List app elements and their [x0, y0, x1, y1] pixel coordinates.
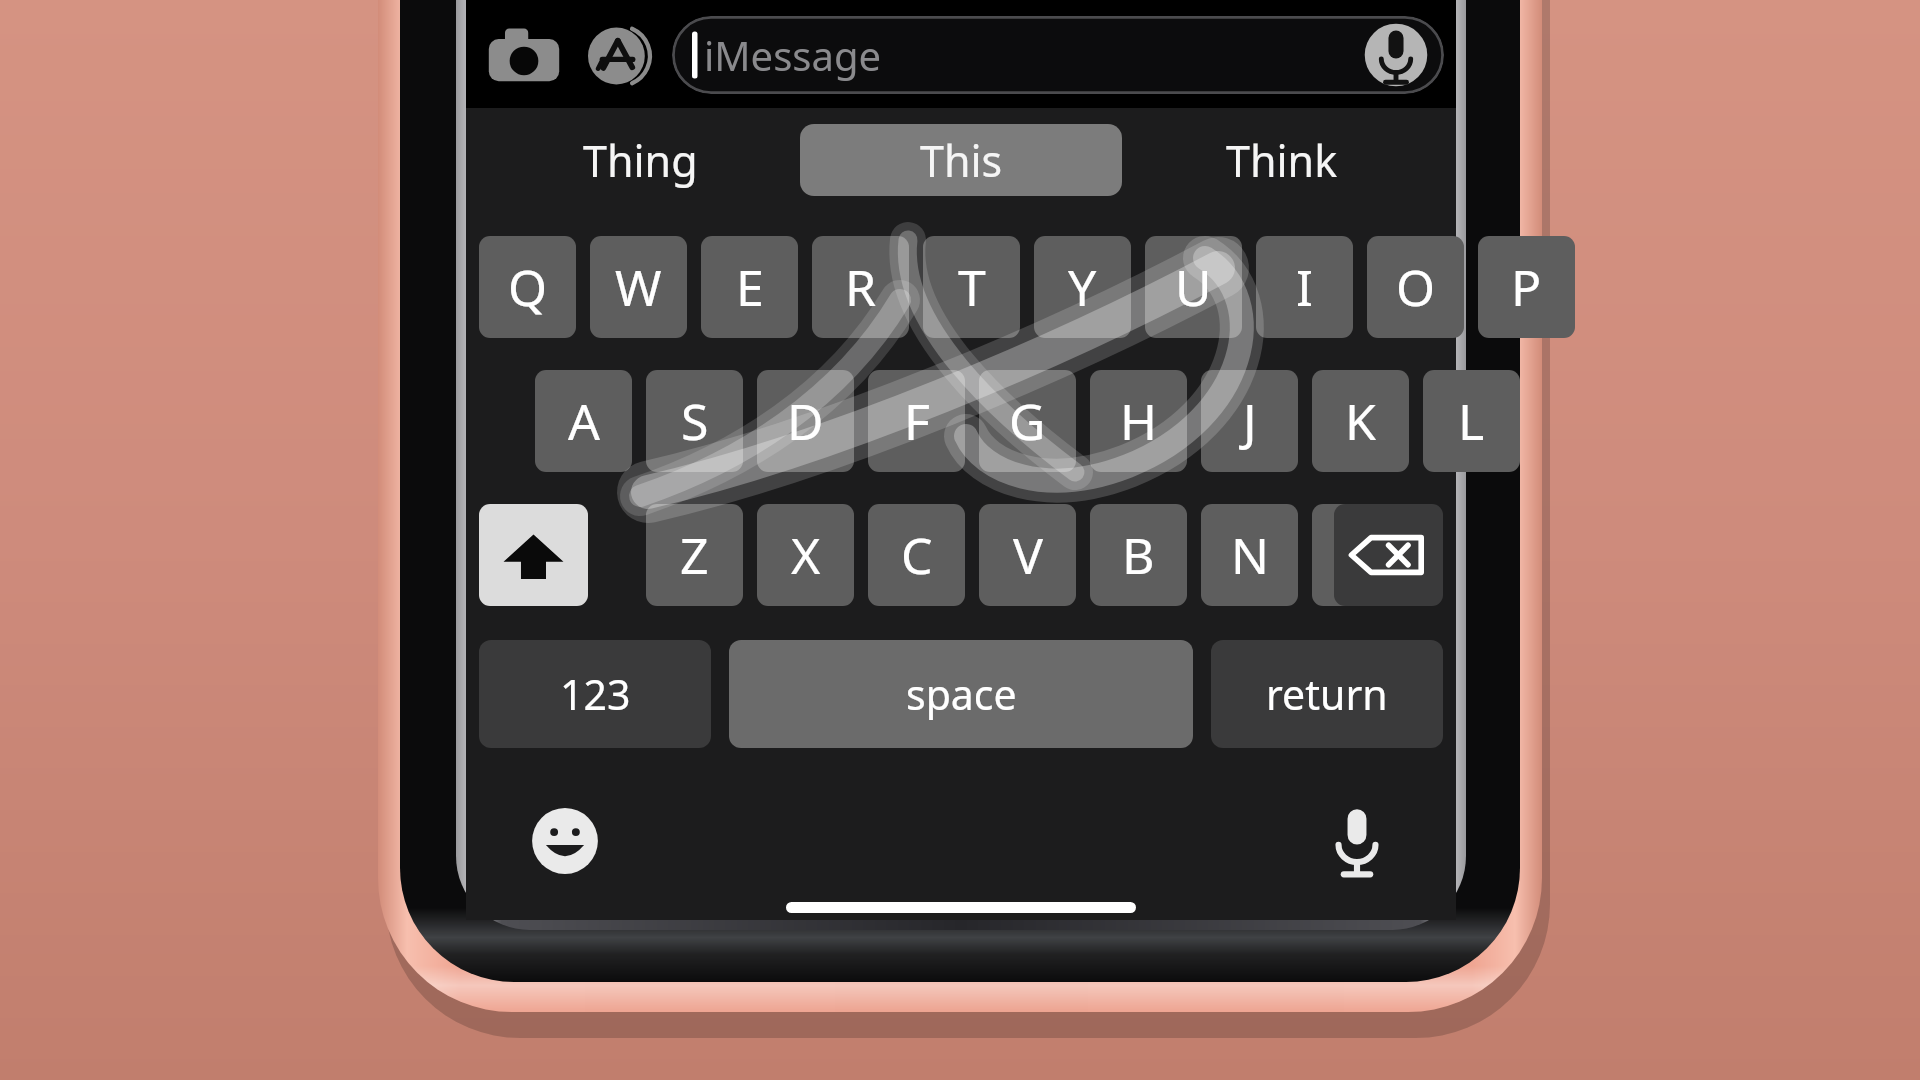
button[interactable]: This [800, 124, 1122, 196]
staticText: U [1175, 253, 1212, 321]
staticText: M [1338, 521, 1384, 589]
button[interactable]: Audio message [1362, 21, 1430, 89]
button[interactable]: L [1423, 370, 1520, 472]
button[interactable]: D [757, 370, 854, 472]
button[interactable]: H [1090, 370, 1187, 472]
button[interactable]: K [1312, 370, 1409, 472]
button[interactable]: B [1090, 504, 1187, 606]
staticText: H [1120, 387, 1158, 455]
staticText: V [1013, 521, 1043, 589]
staticText: G [1009, 387, 1046, 455]
staticText: space [906, 666, 1017, 722]
staticText: D [787, 387, 824, 455]
staticText: A [568, 387, 600, 455]
button[interactable]: P [1478, 236, 1575, 338]
staticText: S [681, 387, 709, 455]
button[interactable]: R [812, 236, 909, 338]
staticText: I [1296, 253, 1313, 321]
button[interactable]: Camera [480, 20, 568, 88]
staticText: Q [508, 253, 548, 321]
button[interactable]: O [1367, 236, 1464, 338]
button[interactable]: Y [1034, 236, 1131, 338]
button[interactable]: J [1201, 370, 1298, 472]
button[interactable]: Emoji [530, 806, 600, 876]
staticText: Y [1068, 253, 1097, 321]
button[interactable]: 123 [479, 640, 711, 748]
staticText: O [1396, 253, 1436, 321]
staticText: Thing [583, 131, 698, 190]
button[interactable]: Think [1132, 124, 1432, 196]
button[interactable]: E [701, 236, 798, 338]
button[interactable]: C [868, 504, 965, 606]
staticText: return [1266, 666, 1388, 722]
staticText: This [920, 131, 1003, 190]
button[interactable]: A [535, 370, 632, 472]
staticText: 123 [560, 666, 631, 722]
button[interactable]: S [646, 370, 743, 472]
button[interactable]: Dictation [1322, 800, 1392, 880]
staticText: K [1345, 387, 1376, 455]
button[interactable]: T [923, 236, 1020, 338]
staticText: L [1458, 387, 1485, 455]
staticText: F [904, 387, 930, 455]
button[interactable]: W [590, 236, 687, 338]
staticText: X [791, 521, 821, 589]
button[interactable]: Thing [490, 124, 790, 196]
button[interactable]: N [1201, 504, 1298, 606]
button[interactable]: return [1211, 640, 1443, 748]
button[interactable]: Backspace [1334, 504, 1443, 606]
button[interactable]: V [979, 504, 1076, 606]
button[interactable]: I [1256, 236, 1353, 338]
staticText: R [845, 253, 877, 321]
staticText: B [1122, 521, 1155, 589]
staticText: P [1511, 253, 1542, 321]
staticText: C [901, 521, 933, 589]
button[interactable]: Q [479, 236, 576, 338]
button[interactable]: U [1145, 236, 1242, 338]
button[interactable]: X [757, 504, 854, 606]
staticText: J [1243, 387, 1257, 455]
staticText: E [736, 253, 764, 321]
button[interactable]: Z [646, 504, 743, 606]
button[interactable]: iMessage [672, 16, 1444, 94]
button[interactable]: App Store [582, 16, 662, 96]
staticText: N [1231, 521, 1269, 589]
staticText: Think [1226, 131, 1338, 190]
staticText: iMessage [704, 28, 882, 82]
button[interactable]: space [729, 640, 1193, 748]
button[interactable]: F [868, 370, 965, 472]
button[interactable]: Shift [479, 504, 588, 606]
staticText: Z [680, 521, 709, 589]
button[interactable]: M [1312, 504, 1409, 606]
button[interactable]: G [979, 370, 1076, 472]
staticText: T [958, 253, 986, 321]
staticText: W [615, 253, 662, 321]
